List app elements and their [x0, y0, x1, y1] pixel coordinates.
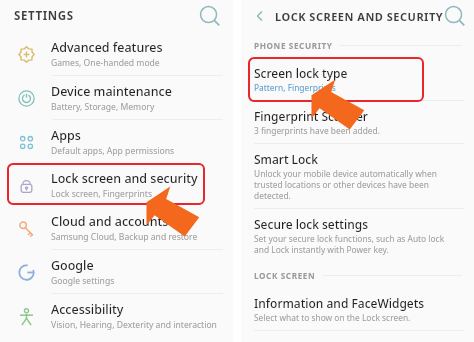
- staticText: Battery, Storage, Memory: [51, 101, 155, 113]
- button[interactable]: Search: [197, 3, 223, 29]
- button[interactable]: Lock screen and security: [0, 163, 233, 206]
- button[interactable]: Back: [249, 5, 271, 27]
- staticText: Fingerprint Scanner: [254, 108, 368, 124]
- staticText: Pattern, Fingerprints: [254, 82, 336, 93]
- button[interactable]: Cloud and accounts: [0, 206, 233, 250]
- staticText: Device maintenance: [51, 83, 172, 100]
- staticText: Advanced features: [51, 39, 163, 56]
- button[interactable]: Fingerprint Scanner: [241, 101, 474, 144]
- staticText: 3 fingerprints have been added.: [254, 125, 381, 136]
- button[interactable]: Apps: [0, 120, 233, 163]
- staticText: Default apps, App permissions: [51, 145, 175, 157]
- staticText: Vision, Hearing, Dexterity and interacti…: [51, 319, 217, 331]
- staticText: LOCK SCREEN: [254, 270, 316, 281]
- button[interactable]: Advanced features: [0, 32, 233, 76]
- staticText: Screen lock type: [254, 65, 348, 81]
- button[interactable]: Accessibility: [0, 294, 233, 337]
- staticText: Lock screen and security: [51, 170, 198, 187]
- staticText: Secure lock settings: [254, 216, 368, 232]
- staticText: PHONE SECURITY: [254, 40, 333, 51]
- staticText: Samsung Cloud, Backup and restore: [51, 231, 198, 243]
- staticText: SETTINGS: [14, 8, 74, 24]
- staticText: Google settings: [51, 275, 115, 287]
- staticText: Google: [51, 257, 94, 274]
- staticText: Accessibility: [51, 301, 124, 318]
- button[interactable]: Secure lock settings: [241, 209, 474, 262]
- button[interactable]: Information and FaceWidgets: [241, 288, 474, 331]
- button[interactable]: Screen lock type: [241, 58, 474, 101]
- button[interactable]: Device maintenance: [0, 76, 233, 120]
- staticText: Unlock your mobile device automatically …: [254, 168, 437, 201]
- staticText: Lock screen, Fingerprints: [51, 188, 153, 200]
- staticText: Cloud and accounts: [51, 213, 169, 230]
- staticText: Select what to show on the Lock screen.: [254, 312, 411, 323]
- staticText: Apps: [51, 127, 81, 144]
- staticText: Information and FaceWidgets: [254, 295, 425, 311]
- button[interactable]: Smart Lock: [241, 144, 474, 209]
- staticText: Set your secure lock functions, such as …: [254, 233, 445, 255]
- button[interactable]: Search: [444, 3, 466, 29]
- staticText: Smart Lock: [254, 151, 318, 167]
- staticText: Games, One-handed mode: [51, 57, 160, 69]
- button[interactable]: Google: [0, 250, 233, 294]
- staticText: LOCK SCREEN AND SECURITY: [275, 9, 444, 24]
